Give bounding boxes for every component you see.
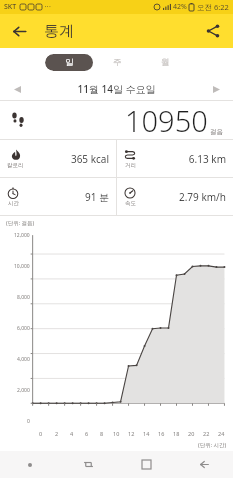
button[interactable]: Back (4, 16, 34, 46)
staticText: 365 kcal (24, 152, 109, 166)
button[interactable]: 칼로리 (0, 140, 116, 177)
staticText: 0 (27, 418, 30, 425)
staticText: 6,000 (17, 325, 30, 332)
staticText: (단위: 걸음) (6, 219, 35, 227)
staticText: 12,000 (14, 232, 30, 239)
staticText: 일 (65, 57, 74, 68)
button[interactable]: Previous day (8, 80, 26, 98)
button[interactable]: 거리 (117, 140, 233, 177)
staticText: 10 (113, 430, 120, 437)
staticText: 42% (173, 2, 187, 12)
staticText: 걸음 (210, 128, 223, 136)
staticText: 월 (161, 57, 170, 68)
button[interactable]: 일 (45, 54, 93, 71)
staticText: 4,000 (17, 356, 30, 363)
button[interactable]: 속도 (117, 178, 233, 215)
staticText: 22 (203, 430, 210, 437)
button[interactable]: Recents (117, 451, 175, 478)
button[interactable]: Next day (207, 80, 225, 98)
staticText: 칼로리 (7, 162, 24, 169)
staticText: 16 (158, 430, 165, 437)
staticText: (단위: 시간) (198, 441, 227, 449)
staticText: 주 (113, 57, 122, 68)
button[interactable]: Split screen (59, 451, 117, 478)
staticText: 8,000 (17, 294, 30, 301)
staticText: 14 (143, 430, 150, 437)
staticText: 오전 6:22 (197, 2, 229, 12)
staticText: 10950 (125, 101, 208, 139)
staticText: 6.13 km (136, 152, 226, 166)
staticText: 속도 (125, 200, 136, 207)
staticText: 통계 (44, 22, 74, 41)
staticText: 6 (85, 430, 89, 437)
staticText: 20 (188, 430, 195, 437)
button[interactable]: 주 (93, 54, 141, 71)
staticText: 4 (70, 430, 74, 437)
staticText: 시간 (8, 200, 19, 207)
staticText: 10,000 (14, 263, 30, 270)
staticText: 2 (55, 430, 59, 437)
staticText: 12 (128, 430, 135, 437)
staticText: 18 (173, 430, 180, 437)
staticText: 8 (100, 430, 104, 437)
staticText: 11월 14일 수요일 (26, 82, 207, 96)
staticText: 0 (39, 430, 43, 437)
staticText: 91 분 (19, 190, 109, 204)
button[interactable]: Back (175, 451, 233, 478)
staticText: ⋯ (44, 3, 51, 11)
staticText: 2,000 (17, 387, 30, 394)
button[interactable]: Share (198, 16, 228, 46)
staticText: SKT (4, 2, 17, 12)
staticText: 24 (218, 430, 225, 437)
button[interactable]: Assistant (0, 451, 59, 478)
staticText: 거리 (125, 162, 136, 169)
button[interactable]: 시간 (0, 178, 116, 215)
staticText: 2.79 km/h (136, 190, 226, 204)
button[interactable]: 월 (141, 54, 189, 71)
